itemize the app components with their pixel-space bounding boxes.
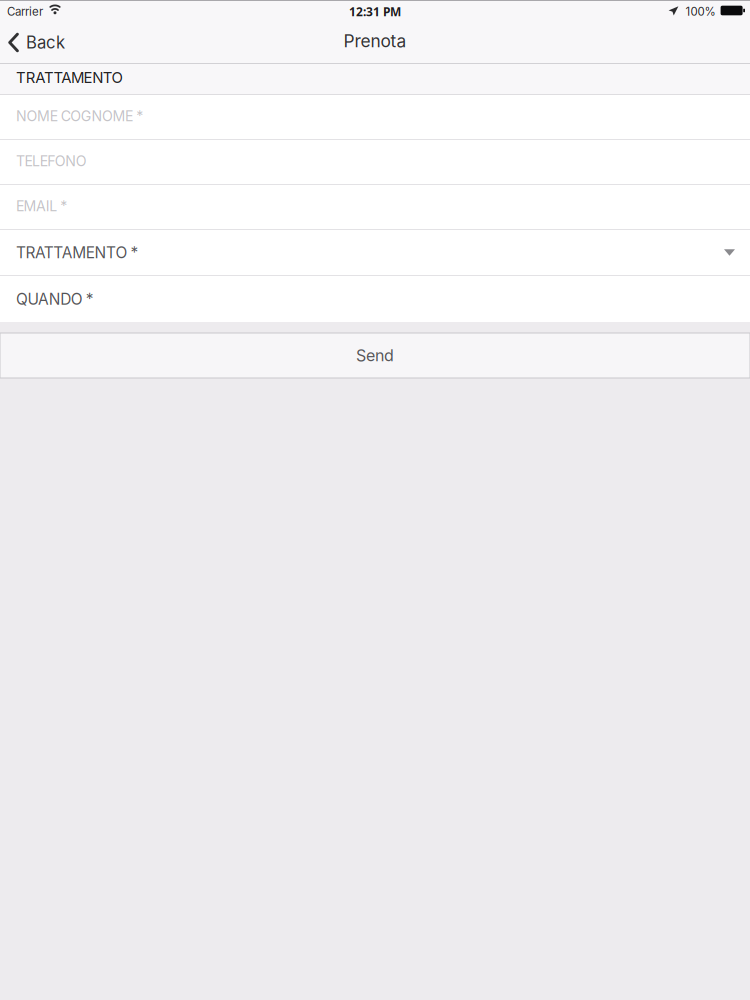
staticText: Prenota bbox=[343, 30, 406, 51]
staticText: Carrier bbox=[7, 5, 43, 18]
button[interactable]: NOME COGNOME * bbox=[0, 95, 750, 140]
staticText: TELEFONO bbox=[16, 152, 87, 169]
button[interactable]: Send bbox=[0, 333, 750, 378]
staticText: TRATTAMENTO * bbox=[16, 243, 139, 262]
button[interactable]: EMAIL * bbox=[0, 185, 750, 230]
staticText: TRATTAMENTO bbox=[16, 68, 122, 87]
staticText: Send bbox=[356, 346, 394, 365]
button[interactable]: Back bbox=[0, 22, 75, 63]
staticText: NOME COGNOME * bbox=[16, 107, 143, 124]
staticText: 12:31 PM bbox=[349, 3, 401, 20]
button[interactable]: TELEFONO bbox=[0, 140, 750, 185]
button[interactable]: TRATTAMENTO * bbox=[0, 230, 750, 276]
staticText: 100% bbox=[686, 5, 716, 18]
staticText: Back bbox=[26, 32, 65, 53]
button[interactable]: QUANDO * bbox=[0, 276, 750, 322]
staticText: QUANDO * bbox=[16, 290, 94, 308]
staticText: EMAIL * bbox=[16, 197, 67, 214]
